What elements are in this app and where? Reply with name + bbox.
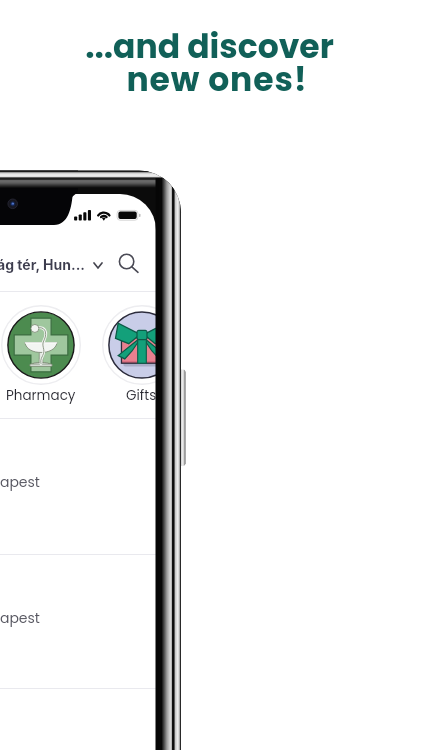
staticText: Szabadság tér, Budapest	[0, 608, 40, 628]
button[interactable]: Search	[112, 246, 142, 276]
button[interactable]: Pharmacy	[0, 305, 91, 405]
button[interactable]: Szabadság tér, Hun...	[0, 242, 156, 290]
staticText: ...and discover	[85, 23, 334, 69]
staticText: new ones!	[126, 56, 308, 102]
button[interactable]: Szabadság tér, Budapest	[0, 555, 156, 689]
staticText: Szabadság tér, Hun...	[0, 256, 85, 273]
staticText: Pharmacy	[6, 386, 76, 405]
button[interactable]: Gifts	[91, 305, 156, 405]
staticText: Szabadság tér, Budapest	[0, 472, 40, 492]
staticText: Gifts	[126, 386, 156, 405]
button[interactable]: Szabadság tér, Budapest	[0, 419, 156, 553]
